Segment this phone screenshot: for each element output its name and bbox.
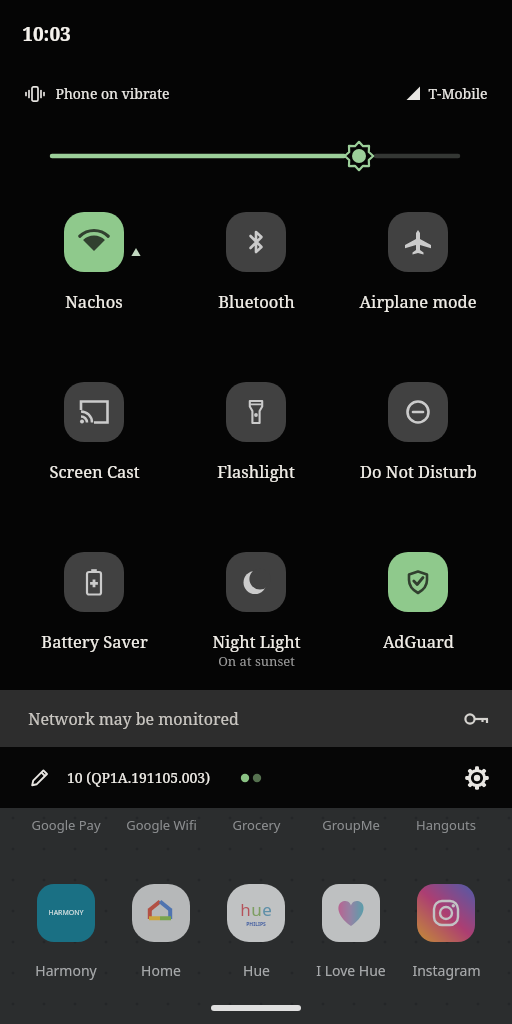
button[interactable]: Network may be monitored	[28, 690, 490, 747]
button[interactable]	[30, 768, 49, 787]
staticText: Hue	[243, 961, 270, 980]
staticText: Battery Saver	[41, 630, 148, 652]
staticText: u	[251, 898, 262, 921]
staticText: PHILIPS	[246, 921, 266, 928]
staticText: Do Not Disturb	[360, 460, 477, 482]
button[interactable]	[226, 212, 286, 272]
button[interactable]	[211, 1005, 301, 1011]
staticText: T-Mobile	[428, 84, 488, 103]
staticText: GroupMe	[322, 816, 380, 834]
staticText: 10 (QP1A.191105.003)	[67, 768, 210, 787]
button[interactable]	[388, 382, 448, 442]
staticText: Grocery	[232, 816, 281, 834]
button[interactable]	[64, 382, 124, 442]
staticText: Flashlight	[217, 460, 295, 482]
staticText: Home	[141, 961, 181, 980]
staticText: e	[262, 898, 272, 921]
staticText: Nachos	[65, 290, 123, 312]
button[interactable]: HARMONY	[19, 878, 113, 980]
staticText: Google Pay	[31, 816, 101, 834]
staticText: 10:03	[22, 21, 71, 47]
staticText: I Love Hue	[316, 961, 386, 980]
staticText: Harmony	[35, 961, 97, 980]
staticText: Google Wifi	[126, 816, 197, 834]
staticText: Hangouts	[416, 816, 476, 834]
staticText: h	[240, 898, 251, 921]
button[interactable]	[388, 212, 448, 272]
button[interactable]	[64, 552, 124, 612]
staticText: Screen Cast	[49, 460, 140, 482]
button[interactable]: h	[209, 878, 303, 980]
button[interactable]: I Love Hue	[304, 878, 398, 980]
staticText: Night Light	[212, 630, 301, 652]
staticText: AdGuard	[383, 630, 454, 652]
staticText: Bluetooth	[218, 290, 295, 312]
staticText: HARMONY	[48, 908, 84, 918]
staticText: Network may be monitored	[28, 708, 239, 730]
button[interactable]	[388, 552, 448, 612]
button[interactable]: Home	[114, 878, 208, 980]
staticText: Airplane mode	[359, 290, 477, 312]
button[interactable]	[226, 382, 286, 442]
button[interactable]	[226, 552, 286, 612]
button[interactable]	[464, 765, 490, 791]
button[interactable]: Instagram	[399, 878, 493, 980]
staticText: Instagram	[412, 961, 481, 980]
staticText: Phone on vibrate	[55, 84, 170, 103]
button[interactable]	[64, 212, 124, 272]
staticText: On at sunset	[218, 652, 295, 670]
